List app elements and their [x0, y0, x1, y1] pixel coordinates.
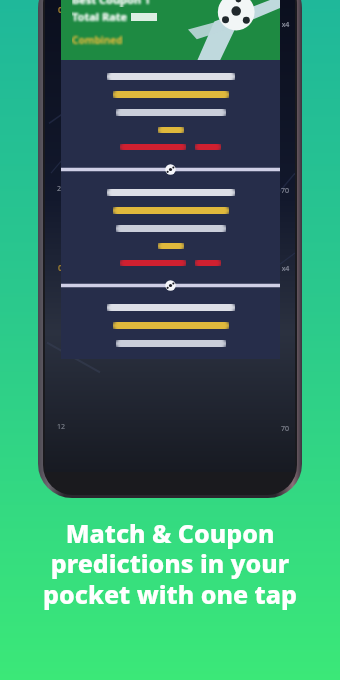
staticText: Best Coupon 1: [72, 0, 151, 7]
staticText: Combined: [72, 33, 123, 47]
staticText: Match & Coupon predictions in your pocke…: [18, 516, 322, 612]
button[interactable]: [61, 292, 280, 359]
staticText: 0: [58, 4, 63, 15]
button[interactable]: [61, 60, 280, 163]
staticText: 3 x4: [274, 264, 290, 274]
staticText: 0: [58, 262, 63, 273]
staticText: 12: [57, 422, 66, 432]
staticText: 70: [281, 186, 290, 196]
staticText: 24: [57, 184, 66, 194]
button[interactable]: Best Coupon 1: [61, 0, 280, 60]
staticText: Total Rate: [72, 9, 128, 24]
staticText: 3 x4: [274, 20, 290, 30]
staticText: 70: [281, 424, 290, 434]
button[interactable]: [61, 176, 280, 279]
